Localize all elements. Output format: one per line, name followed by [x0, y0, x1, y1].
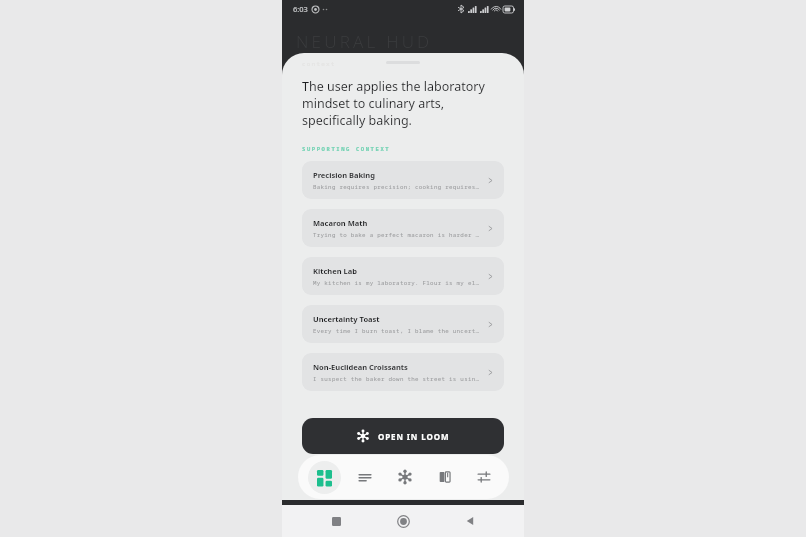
button[interactable]: Precision Baking: [302, 161, 504, 199]
staticText: Every time I burn toast, I blame the unc…: [313, 327, 480, 335]
button[interactable]: Back: [457, 508, 483, 534]
staticText: OPEN IN LOOM: [378, 431, 450, 442]
button[interactable]: Kitchen Lab: [302, 257, 504, 295]
button[interactable]: Macaron Math: [302, 209, 504, 247]
button[interactable]: Library: [430, 462, 460, 492]
staticText: SUPPORTING CONTEXT: [302, 145, 391, 152]
button[interactable]: Settings: [469, 462, 499, 492]
staticText: NEURAL HUD: [296, 30, 433, 53]
staticText: Precision Baking: [313, 170, 375, 180]
staticText: Kitchen Lab: [313, 266, 357, 276]
staticText: Baking requires precision; cooking requi…: [313, 183, 480, 191]
staticText: I suspect the baker down the street is u…: [313, 375, 480, 383]
button[interactable]: Dashboard: [308, 461, 341, 494]
staticText: My kitchen is my laboratory. Flour is my…: [313, 279, 480, 287]
button[interactable]: Loom: [390, 462, 420, 492]
staticText: Non-Euclidean Croissants: [313, 362, 408, 372]
staticText: 6:03: [293, 4, 308, 14]
staticText: Trying to bake a perfect macaron is hard…: [313, 231, 480, 239]
button[interactable]: Feed: [350, 462, 380, 492]
staticText: The user applies the laboratory mindset …: [302, 78, 504, 129]
staticText: Uncertainty Toast: [313, 314, 380, 324]
button[interactable]: Home: [390, 508, 416, 534]
button[interactable]: Non-Euclidean Croissants: [302, 353, 504, 391]
button[interactable]: OPEN IN LOOM: [302, 418, 504, 454]
staticText: Macaron Math: [313, 218, 368, 228]
button[interactable]: Uncertainty Toast: [302, 305, 504, 343]
button[interactable]: Recents: [323, 508, 349, 534]
